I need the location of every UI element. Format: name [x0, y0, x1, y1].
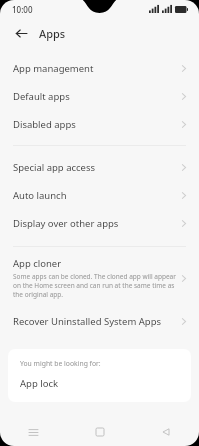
button[interactable]: Recover Uninstalled System Apps [0, 307, 199, 335]
button[interactable]: Special app access [0, 153, 199, 181]
staticText: Disabled apps [13, 118, 180, 131]
staticText: Default apps [13, 90, 180, 103]
button[interactable]: Recent apps [0, 418, 67, 446]
button[interactable]: App cloner [0, 253, 199, 303]
button[interactable]: Back [133, 418, 199, 446]
staticText: App management [13, 62, 180, 75]
button[interactable]: Back [11, 23, 31, 43]
button[interactable]: App management [0, 54, 199, 82]
button[interactable]: Display over other apps [0, 209, 199, 237]
staticText: App lock [20, 377, 59, 390]
button[interactable]: You might be looking for: [8, 349, 191, 402]
staticText: 10:00 [12, 4, 33, 15]
staticText: App cloner [13, 257, 62, 270]
staticText: Apps [39, 26, 66, 41]
staticText: Recover Uninstalled System Apps [13, 315, 180, 328]
button[interactable]: Auto launch [0, 181, 199, 209]
staticText: Special app access [13, 161, 180, 174]
staticText: Display over other apps [13, 217, 180, 230]
button[interactable]: Default apps [0, 82, 199, 110]
staticText: Auto launch [13, 189, 180, 202]
staticText: You might be looking for: [20, 359, 101, 368]
button[interactable]: Home [67, 418, 133, 446]
button[interactable]: Disabled apps [0, 110, 199, 138]
staticText: Some apps can be cloned. The cloned app … [13, 272, 176, 299]
